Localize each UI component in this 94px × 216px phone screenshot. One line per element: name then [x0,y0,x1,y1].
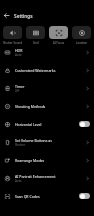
staticText: Off [15,89,20,93]
staticText: Rearrange Modes [15,158,45,163]
staticText: AI Portrait Enhancement [15,174,56,179]
staticText: Shutter [15,143,26,147]
button[interactable]: Toggle [79,193,90,199]
staticText: Auto [15,53,22,57]
staticText: Horizontal Level [15,122,42,127]
button[interactable]: Toggle [79,121,90,127]
staticText: Customized Watermarks [15,68,56,73]
button[interactable]: Shutter Sound [3,26,22,45]
staticText: Settings [14,13,33,20]
button[interactable]: Scan QR Codes [0,187,94,205]
staticText: Auto [15,179,22,183]
button[interactable]: Rearrange Modes [0,151,94,169]
staticText: Location [76,41,88,45]
staticText: Shooting Methods [15,104,46,109]
button[interactable]: AI Portrait Enhancement [0,169,94,187]
staticText: Set Volume Buttons as [15,138,52,143]
staticText: Scan QR Codes [15,194,40,199]
button[interactable]: Location [72,26,91,45]
button[interactable]: Customized Watermarks [0,61,94,79]
staticText: Shutter Sound [3,41,22,45]
staticText: Grid [33,41,39,45]
button[interactable]: Horizontal Level [0,115,94,133]
staticText: AI Focus [53,41,65,45]
button[interactable]: HDR [0,43,94,61]
button[interactable]: Grid [26,26,45,45]
button[interactable]: Back [1,10,12,21]
button[interactable]: Shooting Methods [0,97,94,115]
button[interactable]: AI Focus [49,26,68,45]
staticText: Timer [15,84,25,89]
button[interactable]: Set Volume Buttons as [0,133,94,151]
button[interactable]: Timer [0,79,94,97]
staticText: HDR [15,48,23,53]
